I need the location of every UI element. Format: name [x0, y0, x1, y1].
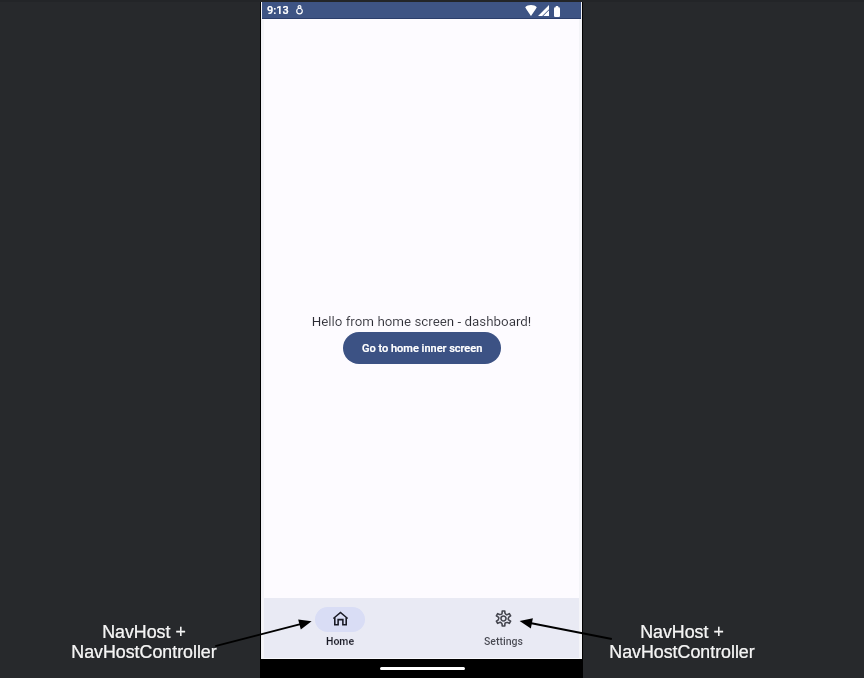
staticText: Hello from home screen - dashboard!: [262, 314, 581, 330]
staticText: Go to home inner screen: [362, 342, 483, 355]
other: Debug: [295, 5, 304, 14]
other: Mobile signal: [538, 5, 549, 16]
staticText: NavHost + NavHostController: [19, 622, 269, 662]
staticText: 9:13: [267, 4, 289, 17]
staticText: Settings: [484, 635, 523, 647]
staticText: Home: [326, 635, 355, 647]
staticText: NavHost + NavHostController: [557, 622, 807, 662]
other: Battery: [554, 6, 560, 17]
button[interactable]: Home: [301, 598, 379, 660]
button[interactable]: Settings: [464, 598, 542, 660]
button[interactable]: Go to home inner screen: [343, 332, 501, 364]
other: Wi-Fi: [525, 5, 537, 16]
